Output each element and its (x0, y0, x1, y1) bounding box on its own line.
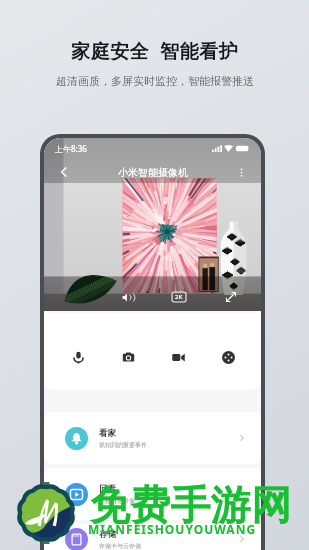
button[interactable]: Pan tilt control (213, 342, 243, 372)
button[interactable]: 回看 (44, 468, 261, 520)
staticText: 回看 (99, 484, 116, 495)
button[interactable]: Mute (115, 285, 139, 309)
button[interactable]: Full screen (219, 285, 243, 309)
staticText: 免费手游网 (90, 480, 291, 530)
button[interactable]: Record video (163, 342, 193, 372)
staticText: 抓拍到的重要事件 (99, 441, 147, 449)
button[interactable]: Resolution 2K (172, 292, 186, 302)
staticText: 看家 (99, 428, 116, 439)
button[interactable]: 看家 (44, 412, 261, 464)
staticText: 存储 (99, 529, 116, 540)
button[interactable]: More options (229, 160, 253, 184)
staticText: MIANFEISHOUYOUWANG (88, 521, 257, 537)
staticText: 超清画质，多屏实时监控，智能报警推送 (56, 74, 254, 88)
staticText: 家庭安全 智能看护 (71, 38, 238, 64)
button[interactable]: 存储 (44, 524, 261, 550)
button[interactable]: Back (52, 160, 76, 184)
staticText: 2K (175, 293, 183, 301)
staticText: 小米智能摄像机 (118, 166, 188, 179)
button[interactable]: Photo (113, 342, 143, 372)
button[interactable]: Microphone (63, 342, 93, 372)
staticText: 查看历史录像 (99, 497, 135, 505)
staticText: 存储卡与云存储 (99, 542, 141, 550)
staticText: 上午8:36 (55, 143, 87, 154)
